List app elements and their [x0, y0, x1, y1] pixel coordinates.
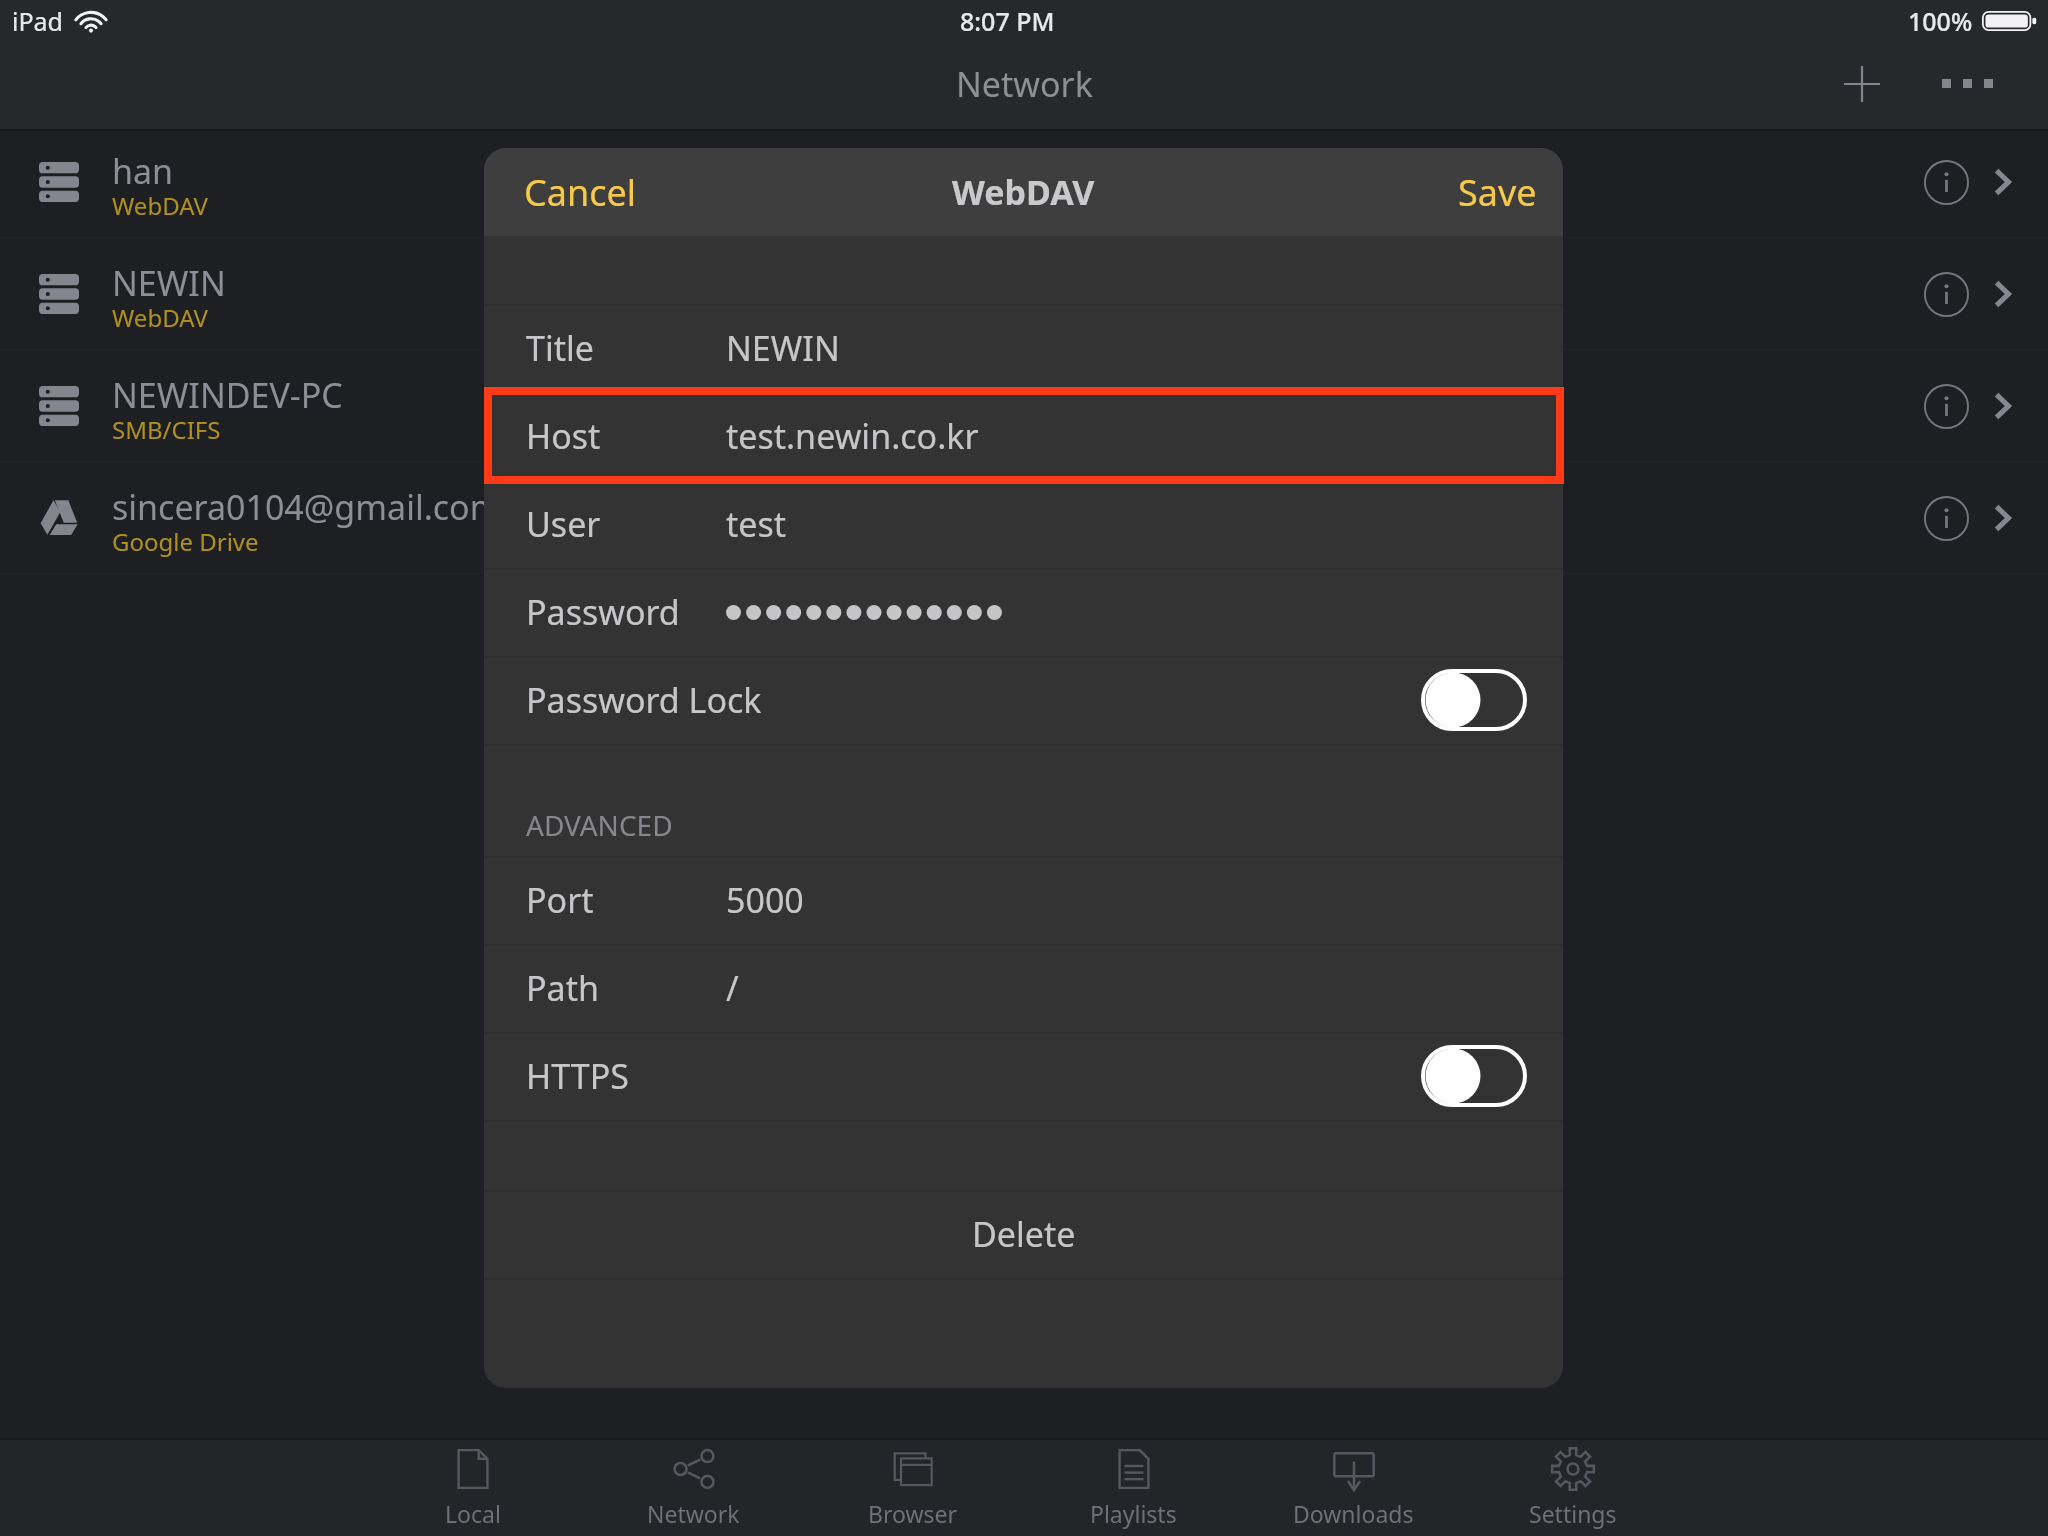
button[interactable]: Playlists — [1023, 1438, 1243, 1536]
button[interactable]: More options — [1908, 41, 2026, 126]
staticText: User — [526, 501, 601, 547]
button[interactable]: Info — [1900, 350, 1992, 462]
staticText: test.newin.co.kr — [726, 413, 979, 459]
staticText: Network — [956, 61, 1093, 107]
button[interactable]: NEWIN — [0, 238, 2048, 350]
staticText: Password — [526, 589, 680, 635]
button[interactable]: Info — [1900, 238, 1992, 350]
staticText: Title — [526, 325, 594, 371]
staticText: 100% — [1908, 4, 1973, 38]
button[interactable]: User — [484, 480, 1563, 568]
staticText: HTTPS — [526, 1053, 629, 1099]
staticText: 8:07 PM — [960, 4, 1055, 38]
button[interactable]: Port — [484, 856, 1563, 944]
button[interactable]: Delete — [484, 1190, 1563, 1278]
button[interactable]: Local — [363, 1438, 583, 1536]
button[interactable]: Title — [484, 304, 1563, 392]
staticText: han — [112, 148, 174, 194]
staticText: NEWINDEV-PC — [112, 372, 343, 418]
staticText: Google Drive — [112, 525, 259, 558]
button[interactable]: Save — [1432, 148, 1563, 236]
button[interactable]: Network — [583, 1438, 803, 1536]
staticText: WebDAV — [952, 169, 1095, 215]
staticText: Path — [526, 965, 599, 1011]
staticText: 5000 — [726, 877, 804, 923]
button[interactable]: NEWINDEV-PC — [0, 350, 2048, 462]
staticText: Cancel — [524, 168, 637, 217]
staticText: sincera0104@gmail.com — [112, 484, 502, 530]
staticText: iPad — [12, 4, 63, 38]
button[interactable]: Add — [1816, 41, 1908, 126]
button[interactable]: Password Lock — [484, 656, 1563, 744]
button[interactable]: Password — [484, 568, 1563, 656]
button[interactable]: Host — [484, 392, 1563, 480]
staticText: Password Lock — [526, 677, 762, 723]
button[interactable]: han — [0, 126, 2048, 238]
staticText: SMB/CIFS — [112, 413, 221, 446]
staticText: test — [726, 501, 787, 547]
staticText: Settings — [1529, 1498, 1617, 1529]
staticText: Network — [647, 1498, 740, 1529]
staticText: WebDAV — [112, 189, 208, 222]
button[interactable]: Path — [484, 944, 1563, 1032]
button[interactable]: Cancel — [484, 148, 659, 236]
staticText: Browser — [868, 1498, 958, 1529]
staticText: Port — [526, 877, 594, 923]
staticText: Host — [526, 413, 601, 459]
staticText: Downloads — [1293, 1498, 1414, 1529]
button[interactable]: HTTPS — [484, 1032, 1563, 1120]
staticText: Save — [1458, 168, 1537, 217]
staticText: / — [726, 965, 739, 1011]
staticText: ADVANCED — [526, 806, 673, 844]
staticText: Local — [445, 1498, 501, 1529]
staticText: Playlists — [1090, 1498, 1177, 1529]
button[interactable]: Browser — [803, 1438, 1023, 1536]
button[interactable]: Settings — [1463, 1438, 1683, 1536]
button[interactable]: Info — [1900, 462, 1992, 574]
button[interactable]: sincera0104@gmail.com — [0, 462, 2048, 574]
button[interactable]: Info — [1900, 126, 1992, 238]
button[interactable]: Downloads — [1243, 1438, 1463, 1536]
staticText: NEWIN — [726, 325, 840, 371]
staticText: NEWIN — [112, 260, 226, 306]
staticText: Delete — [972, 1211, 1076, 1257]
staticText: WebDAV — [112, 301, 208, 334]
